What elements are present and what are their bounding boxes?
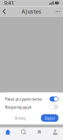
button[interactable]: Profile [47,129,63,135]
button[interactable]: More [53,6,63,16]
button[interactable]: Home [0,129,16,135]
staticText: 9:41 [4,0,14,7]
staticText: Anuluj [15,115,26,121]
button[interactable]: Notifications [31,129,47,135]
staticText: Zapisz [44,115,55,121]
button[interactable]: Pokaż przypomnienia [4,95,58,103]
button[interactable]: Zapisz [41,114,58,122]
staticText: Rozpoznaj język [4,104,31,110]
button[interactable]: Rozpoznaj język [4,103,58,111]
button[interactable]: Back [0,6,9,16]
button[interactable]: Anuluj [11,114,29,122]
staticText: Ajustes [21,8,41,15]
staticText: Pokaż przypomnienia [4,96,41,102]
button[interactable]: Search [16,129,32,135]
